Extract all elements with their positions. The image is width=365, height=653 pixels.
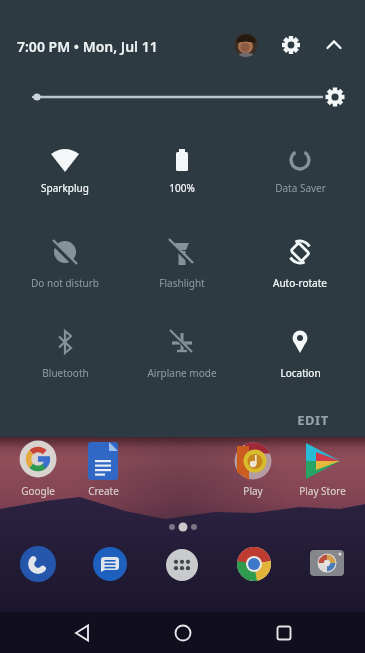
staticText: Create <box>88 484 119 498</box>
button[interactable] <box>231 438 275 496</box>
button[interactable] <box>127 320 237 392</box>
button[interactable] <box>244 229 354 301</box>
button[interactable] <box>306 544 348 584</box>
button[interactable] <box>264 615 304 651</box>
staticText: Data Saver <box>275 181 326 195</box>
staticText: Flashlight <box>159 276 205 290</box>
button[interactable] <box>127 229 237 301</box>
button[interactable] <box>163 615 203 651</box>
button[interactable] <box>322 33 346 57</box>
button[interactable] <box>90 544 130 584</box>
staticText: Play <box>243 484 263 498</box>
staticText: Sparkplug <box>41 181 89 195</box>
staticText: Do not disturb <box>31 276 99 290</box>
button[interactable] <box>127 138 237 210</box>
button[interactable] <box>234 32 260 58</box>
button[interactable] <box>18 544 58 584</box>
staticText: Auto-rotate <box>273 276 327 290</box>
button[interactable] <box>234 544 274 584</box>
staticText: 100% <box>169 181 195 195</box>
staticText: Play Store <box>299 484 346 498</box>
button[interactable] <box>244 320 354 392</box>
button[interactable] <box>10 320 120 392</box>
staticText: Location <box>280 366 321 380</box>
button[interactable] <box>62 615 102 651</box>
button[interactable] <box>279 33 303 57</box>
staticText: Bluetooth <box>42 366 89 380</box>
button[interactable] <box>282 405 342 433</box>
button[interactable] <box>300 438 354 496</box>
button[interactable] <box>10 138 120 210</box>
staticText: 7:00 PM • Mon, Jul 11 <box>17 37 158 56</box>
button[interactable] <box>81 438 125 496</box>
staticText: EDIT <box>297 411 329 429</box>
staticText: Google <box>21 484 55 498</box>
button[interactable] <box>244 138 354 210</box>
button[interactable] <box>16 438 60 496</box>
button[interactable] <box>162 544 202 584</box>
staticText: Airplane mode <box>147 366 217 380</box>
button[interactable] <box>10 229 120 301</box>
button[interactable] <box>25 85 330 109</box>
